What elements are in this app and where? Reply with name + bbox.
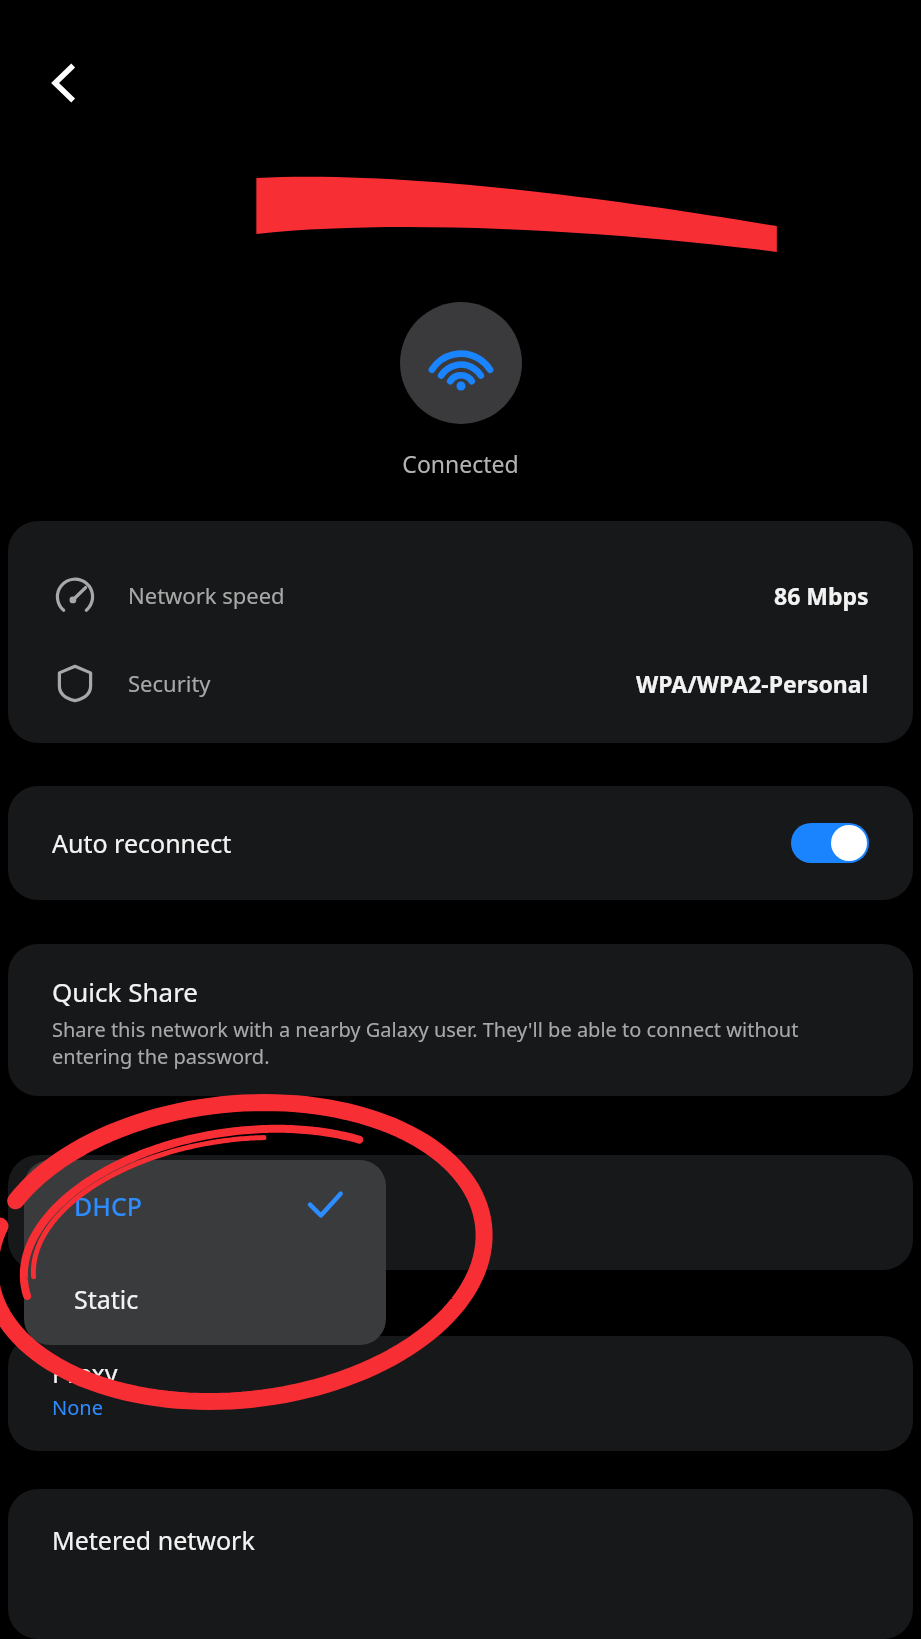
- staticText: Connected: [402, 448, 519, 479]
- button[interactable]: Metered network: [8, 1489, 913, 1639]
- button[interactable]: Auto reconnect: [8, 786, 913, 900]
- button[interactable]: [8, 1155, 913, 1270]
- staticText: WPA/WPA2-Personal: [636, 668, 869, 699]
- staticText: DHCP: [74, 1189, 143, 1223]
- staticText: Quick Share: [52, 974, 199, 1009]
- staticText: Share this network with a nearby Galaxy …: [52, 1016, 869, 1070]
- staticText: Auto reconnect: [52, 826, 232, 860]
- staticText: Static: [74, 1282, 139, 1316]
- button[interactable]: Proxy: [8, 1336, 913, 1451]
- staticText: Security: [128, 668, 211, 698]
- button[interactable]: Quick Share: [8, 944, 913, 1096]
- staticText: 86 Mbps: [774, 580, 869, 611]
- button[interactable]: Back: [34, 52, 96, 114]
- button[interactable]: DHCP: [24, 1160, 386, 1252]
- staticText: Proxy: [52, 1356, 118, 1390]
- staticText: Metered network: [52, 1523, 255, 1557]
- button[interactable]: Static: [24, 1252, 386, 1345]
- staticText: Network speed: [128, 580, 285, 610]
- staticText: None: [52, 1394, 103, 1421]
